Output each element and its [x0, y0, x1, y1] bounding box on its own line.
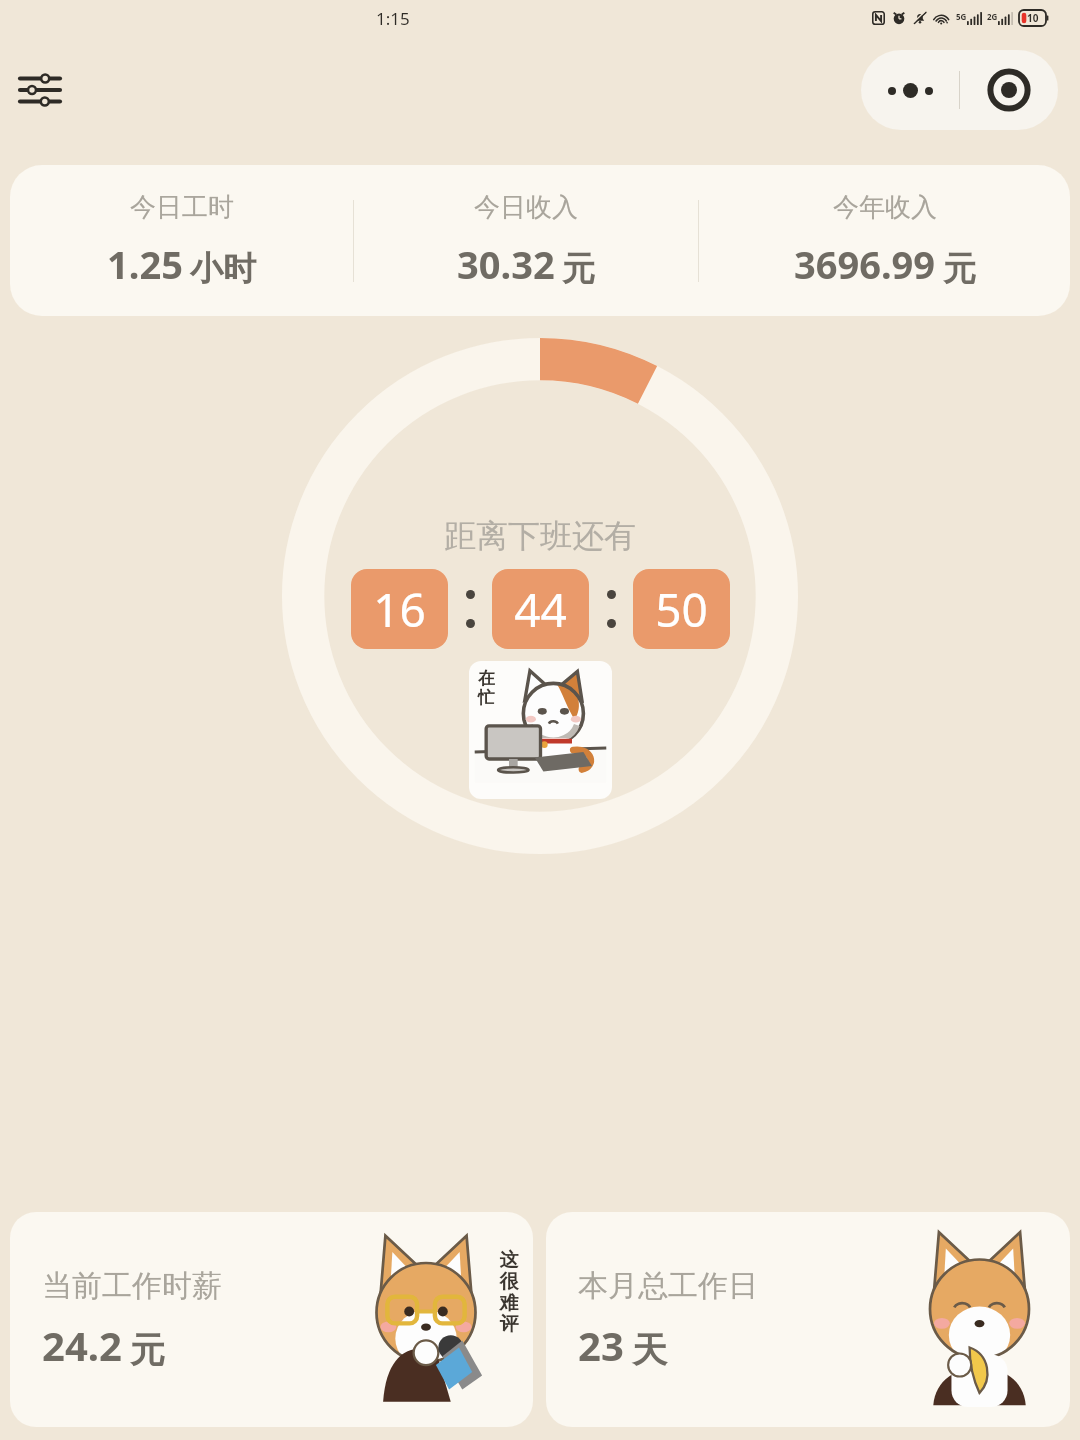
staticText: 50 — [655, 578, 708, 641]
staticText: 24.2 — [42, 1318, 122, 1372]
button[interactable]: More — [861, 50, 959, 130]
staticText: 小时 — [190, 248, 256, 290]
staticText: 今年收入 — [833, 191, 937, 224]
staticText: 30.32 — [457, 238, 555, 290]
button[interactable]: Settings — [8, 58, 72, 122]
staticText: 距离下班还有 — [444, 516, 636, 556]
staticText: 3696.99 — [794, 238, 936, 290]
staticText: 元 — [943, 248, 976, 290]
staticText: 16 — [373, 578, 426, 641]
button[interactable]: 今日工时 — [10, 165, 1070, 316]
staticText: 23 — [578, 1318, 624, 1372]
staticText: 元 — [562, 248, 595, 290]
staticText: 这很难评 — [497, 1248, 521, 1335]
staticText: 10 — [1027, 11, 1039, 25]
staticText: 今日收入 — [474, 191, 578, 224]
button[interactable]: Close — [960, 50, 1058, 130]
staticText: 元 — [130, 1328, 165, 1372]
staticText: 44 — [514, 578, 567, 641]
staticText: 今日工时 — [130, 191, 234, 224]
button[interactable]: 当前工作时薪 — [10, 1212, 533, 1427]
staticText: 1:15 — [376, 7, 410, 30]
staticText: 当前工作时薪 — [42, 1267, 222, 1305]
staticText: 2G — [987, 11, 998, 22]
staticText: 1.25 — [107, 238, 183, 290]
staticText: 天 — [632, 1328, 667, 1372]
button[interactable]: 距离下班还有 — [282, 338, 798, 854]
staticText: 在忙 — [478, 668, 500, 708]
button[interactable]: 本月总工作日 — [546, 1212, 1070, 1427]
staticText: 5G — [956, 11, 967, 22]
staticText: 本月总工作日 — [578, 1267, 758, 1305]
